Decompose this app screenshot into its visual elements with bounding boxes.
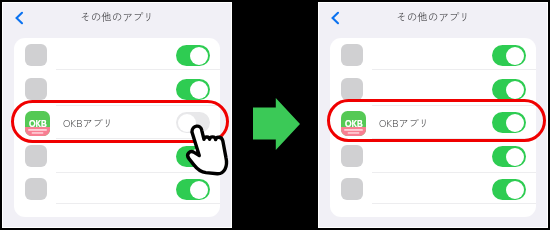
button[interactable]: OKB	[330, 105, 536, 139]
staticText: その他のアプリ	[80, 9, 154, 24]
button[interactable]: Switch on	[176, 179, 210, 200]
button[interactable]: Switch on	[492, 45, 526, 66]
staticText: OKB	[29, 117, 47, 130]
button[interactable]: Switch on	[14, 172, 220, 206]
button[interactable]: Switch on	[492, 146, 526, 167]
button[interactable]: Switch on	[330, 38, 536, 72]
staticText: OKB	[345, 117, 363, 130]
staticText: OKBアプリ	[379, 115, 429, 129]
button[interactable]: Switch on	[14, 139, 220, 173]
button[interactable]: Switch on	[14, 38, 220, 72]
button[interactable]: Switch on	[492, 79, 526, 100]
button[interactable]: Switch on	[14, 72, 220, 106]
button[interactable]: Switch on	[176, 79, 210, 100]
button[interactable]: OKB	[14, 105, 220, 139]
button[interactable]: Switch on	[330, 139, 536, 173]
button[interactable]: Switch on	[492, 112, 526, 133]
button[interactable]: Back	[8, 7, 30, 29]
staticText: その他のアプリ	[396, 9, 470, 24]
staticText: OKBアプリ	[63, 115, 113, 129]
button[interactable]: Back	[324, 7, 346, 29]
button[interactable]: Switch on	[330, 172, 536, 206]
button[interactable]: Switch on	[176, 45, 210, 66]
button[interactable]: Switch on	[176, 146, 210, 167]
button[interactable]: Switch off	[176, 112, 210, 133]
button[interactable]: Switch on	[330, 72, 536, 106]
button[interactable]: Switch on	[492, 179, 526, 200]
